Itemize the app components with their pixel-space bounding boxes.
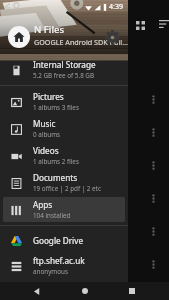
staticText: 19 office | 2 pdf | 2 etc <box>33 184 101 193</box>
staticText: anonymous <box>33 267 68 276</box>
staticText: Manage Network & Cloud Servi… <box>33 284 121 295</box>
staticText: N Files <box>34 23 65 36</box>
button[interactable]: Internal Storage <box>3 57 125 82</box>
staticText: 1 albums 3 files <box>33 103 79 112</box>
staticText: 104 installed <box>33 211 71 220</box>
button[interactable]: Google Drive <box>3 229 125 251</box>
button[interactable]: More options <box>146 257 160 271</box>
button[interactable]: Music <box>3 116 125 141</box>
staticText: Apps <box>33 199 53 210</box>
button[interactable]: Videos <box>3 143 125 168</box>
staticText: Pictures <box>33 91 64 102</box>
button[interactable]: More options <box>146 191 160 205</box>
button[interactable]: Back <box>26 282 48 300</box>
staticText: 0 albums <box>33 130 61 139</box>
staticText: Videos <box>33 145 59 156</box>
button[interactable]: Apps <box>3 197 125 222</box>
button[interactable]: Grid view <box>132 17 148 33</box>
staticText: Music <box>33 118 56 129</box>
staticText: GOOGLE Android SDK built for <box>34 37 128 47</box>
button[interactable]: Settings <box>103 28 121 46</box>
button[interactable]: More options <box>146 92 160 106</box>
button[interactable]: Account <box>8 26 30 48</box>
button[interactable]: More options <box>146 158 160 172</box>
button[interactable]: More options <box>146 224 160 238</box>
staticText: Internal Storage <box>33 59 96 70</box>
staticText: ftp.shef.ac.uk <box>33 255 85 266</box>
staticText: Documents <box>33 172 78 183</box>
button[interactable]: Sort <box>158 17 169 33</box>
staticText: 1 albums 2 files <box>33 157 79 166</box>
button[interactable]: More options <box>146 125 160 139</box>
staticText: 4:39 <box>109 2 123 12</box>
button[interactable]: Home <box>74 282 96 300</box>
button[interactable]: Pictures <box>3 89 125 114</box>
button[interactable]: ftp.shef.ac.uk <box>3 253 125 278</box>
button[interactable]: Recents <box>121 282 143 300</box>
button[interactable]: Documents <box>3 170 125 195</box>
staticText: 5.2 GB free of 5.8 GB <box>33 71 95 80</box>
staticText: Google Drive <box>33 235 84 246</box>
button[interactable]: Manage Network & Cloud Servi… <box>3 280 125 299</box>
